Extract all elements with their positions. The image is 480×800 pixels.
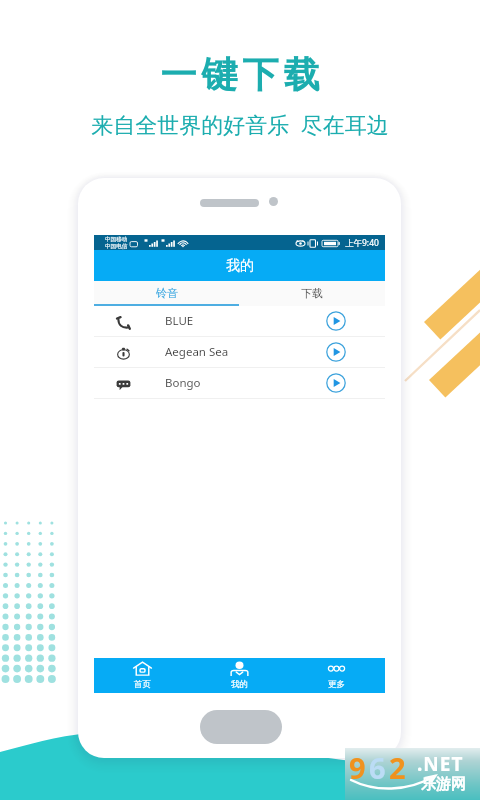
button[interactable]: Play BLUE (326, 311, 346, 331)
button[interactable]: Bongo (94, 368, 385, 398)
button[interactable]: BLUE (94, 306, 385, 336)
staticText: 上午9:40 (345, 237, 379, 249)
button[interactable]: 我的 (191, 658, 288, 693)
button[interactable]: Play Aegean Sea (326, 342, 346, 362)
staticText: 铃音 (156, 286, 178, 300)
button[interactable]: 下载 (239, 281, 385, 304)
staticText: Aegean Sea (165, 344, 229, 360)
button[interactable]: 铃音 (94, 281, 239, 304)
staticText: 更多 (328, 679, 345, 690)
staticText: 6 (369, 748, 389, 787)
button[interactable]: 更多 (288, 658, 385, 693)
button[interactable]: Home (200, 710, 282, 744)
staticText: 中国移动 (105, 236, 128, 243)
staticText: 我的 (226, 257, 254, 275)
button[interactable]: 首页 (94, 658, 191, 693)
staticText: 一键下载 (158, 52, 322, 97)
staticText: Bongo (165, 375, 201, 391)
staticText: 下载 (301, 286, 323, 300)
button[interactable]: Aegean Sea (94, 337, 385, 367)
staticText: 我的 (231, 679, 248, 690)
staticText: .NET (417, 751, 464, 777)
staticText: 乐游网 (421, 775, 466, 794)
button[interactable]: Play Bongo (326, 373, 346, 393)
staticText: 首页 (134, 679, 151, 690)
staticText: 中国电信 (105, 243, 128, 250)
staticText: 来自全世界的好音乐 尽在耳边 (91, 109, 389, 139)
staticText: BLUE (165, 313, 194, 329)
staticText: 2 (389, 748, 409, 787)
staticText: 9 (349, 748, 369, 787)
